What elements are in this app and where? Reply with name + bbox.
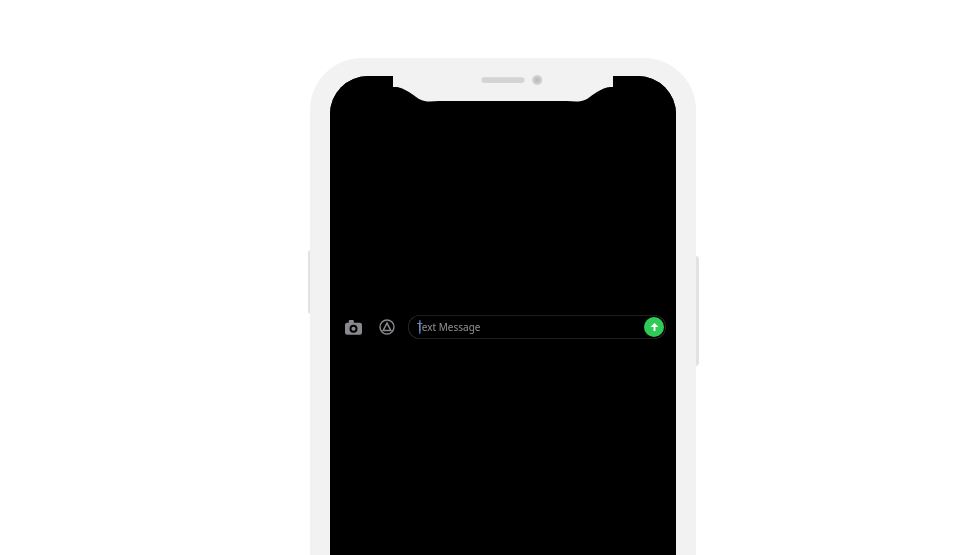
button[interactable]: Text Message [408, 315, 666, 339]
button[interactable]: Send [644, 317, 664, 337]
button[interactable]: Apps [374, 314, 400, 340]
button[interactable]: Camera [340, 314, 366, 340]
staticText: Text Message [417, 320, 481, 334]
